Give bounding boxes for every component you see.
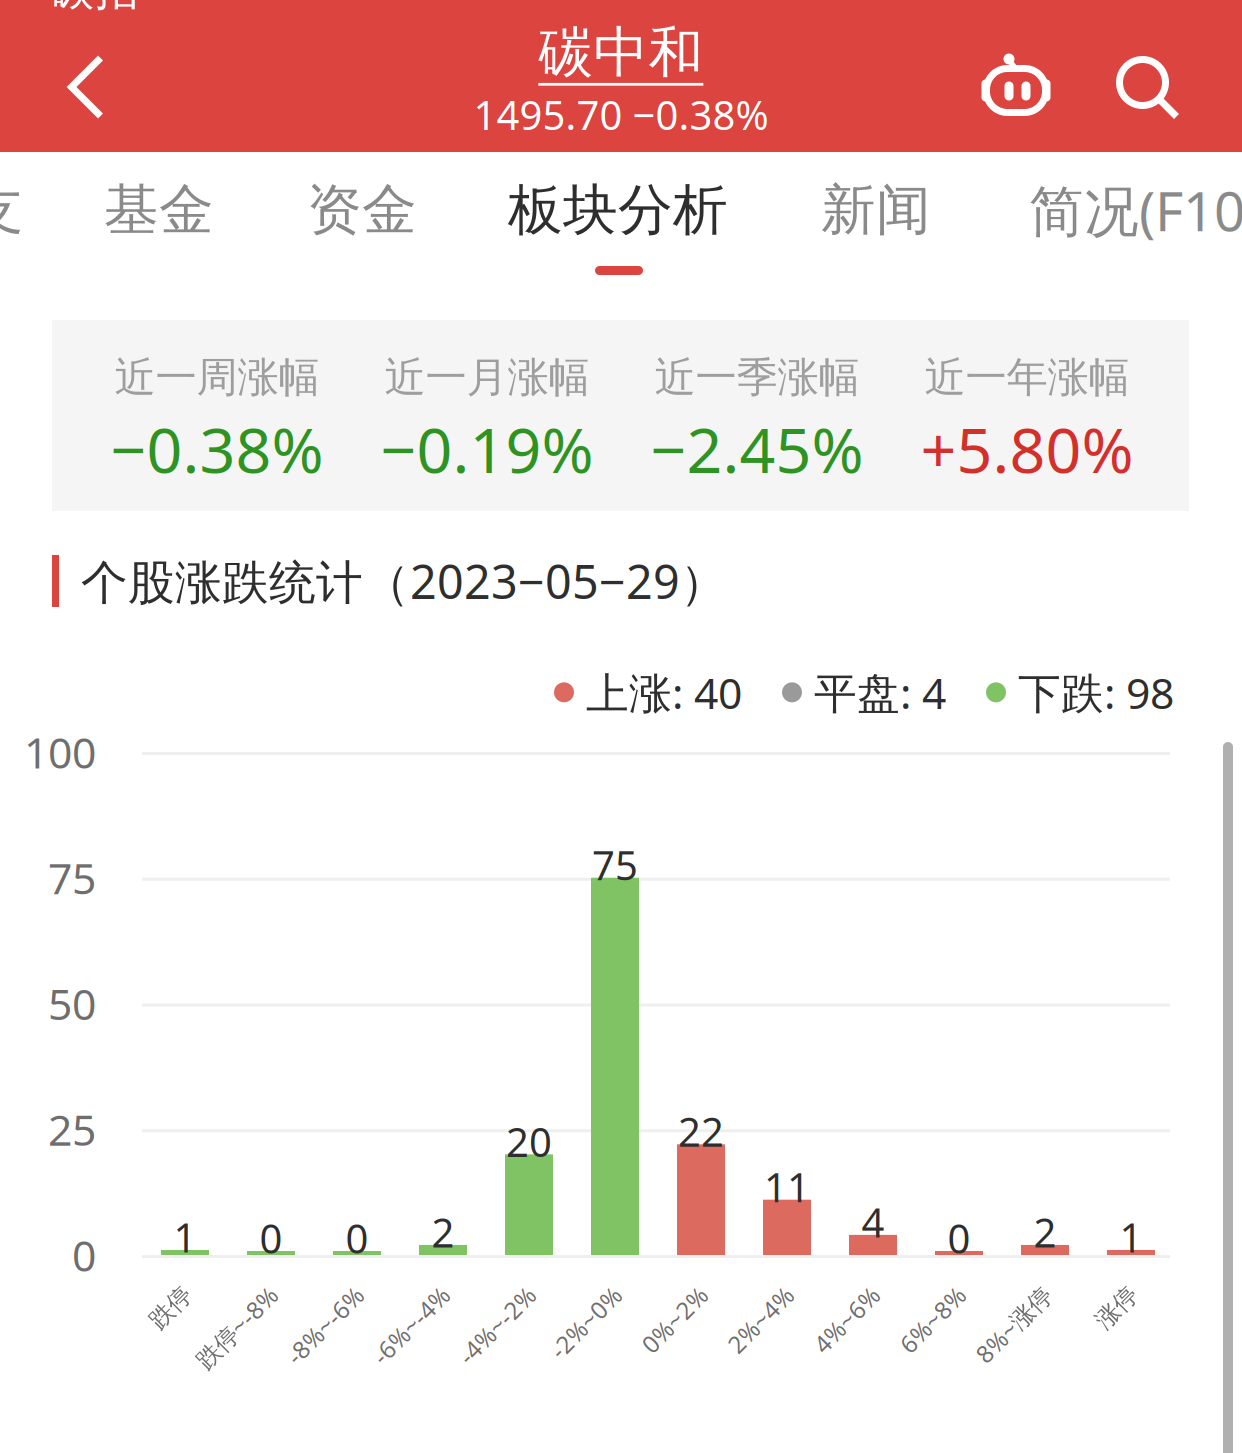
staticText: 涨停 — [1075, 1280, 1123, 1310]
staticText: 75 — [48, 849, 96, 906]
staticText: 跌停~-8% — [159, 1279, 263, 1311]
staticText: 0 — [345, 1211, 368, 1264]
staticText: 0 — [947, 1211, 970, 1264]
staticText: −2.45% — [650, 407, 863, 490]
staticText: 0%~2% — [611, 1279, 693, 1311]
staticText: 近一月涨幅 — [384, 352, 589, 403]
staticText: −0.38% — [110, 407, 323, 490]
staticText: +5.80% — [920, 407, 1133, 490]
staticText: 25 — [48, 1101, 96, 1158]
staticText: 简况(F10 — [1029, 174, 1242, 246]
button[interactable]: 资金 — [197, 160, 527, 260]
button[interactable]: 基金 — [0, 160, 324, 260]
staticText: 0 — [72, 1227, 96, 1283]
staticText: 4 — [861, 1195, 884, 1248]
staticText: 下跌: 98 — [1018, 664, 1174, 721]
staticText: 新闻 — [821, 176, 931, 243]
button[interactable]: Search — [1094, 13, 1204, 165]
staticText: −0.19% — [380, 407, 593, 490]
button[interactable]: Back — [23, 13, 153, 165]
staticText: 2 — [431, 1205, 454, 1258]
staticText: -2%~0% — [517, 1279, 607, 1311]
staticText: -8%~-6% — [251, 1279, 349, 1311]
staticText: 跌停 — [129, 1280, 177, 1310]
staticText: -4%~-2% — [423, 1279, 521, 1311]
button[interactable]: AI assistant — [961, 6, 1071, 158]
staticText: 11 — [764, 1160, 810, 1213]
button[interactable]: 支 — [0, 160, 161, 260]
staticText: 上涨: 40 — [586, 664, 742, 721]
staticText: 20 — [506, 1115, 552, 1168]
staticText: 板块分析 — [508, 176, 728, 243]
staticText: 1495.70 −0.38% — [473, 88, 768, 141]
staticText: 2%~4% — [697, 1279, 779, 1311]
staticText: 6%~8% — [869, 1279, 951, 1311]
staticText: 2 — [1033, 1205, 1056, 1258]
staticText: 50 — [48, 975, 96, 1032]
staticText: 近一周涨幅 — [114, 352, 319, 403]
staticText: -6%~-4% — [337, 1279, 435, 1311]
staticText: 碳中和 — [538, 19, 703, 86]
staticText: 个股涨跌统计（2023−05−29） — [81, 550, 727, 612]
button[interactable]: 简况(F10 — [972, 160, 1242, 260]
button[interactable]: 新闻 — [711, 160, 1041, 260]
staticText: 100 — [24, 724, 96, 780]
staticText: 近一季涨幅 — [654, 352, 859, 403]
staticText: 近一年涨幅 — [924, 352, 1129, 403]
button[interactable]: 板块分析 — [453, 160, 783, 260]
staticText: 1 — [173, 1210, 196, 1263]
staticText: 碳指 — [49, 0, 139, 17]
staticText: 资金 — [307, 176, 417, 243]
staticText: 22 — [678, 1105, 724, 1158]
staticText: 基金 — [104, 176, 214, 243]
staticText: 平盘: 4 — [814, 664, 946, 721]
staticText: 4%~6% — [783, 1279, 865, 1311]
staticText: 支 — [0, 176, 23, 243]
staticText: 8%~涨停 — [941, 1279, 1037, 1311]
staticText: 75 — [592, 838, 638, 891]
staticText: 0 — [259, 1211, 282, 1264]
staticText: 1 — [1119, 1210, 1142, 1263]
